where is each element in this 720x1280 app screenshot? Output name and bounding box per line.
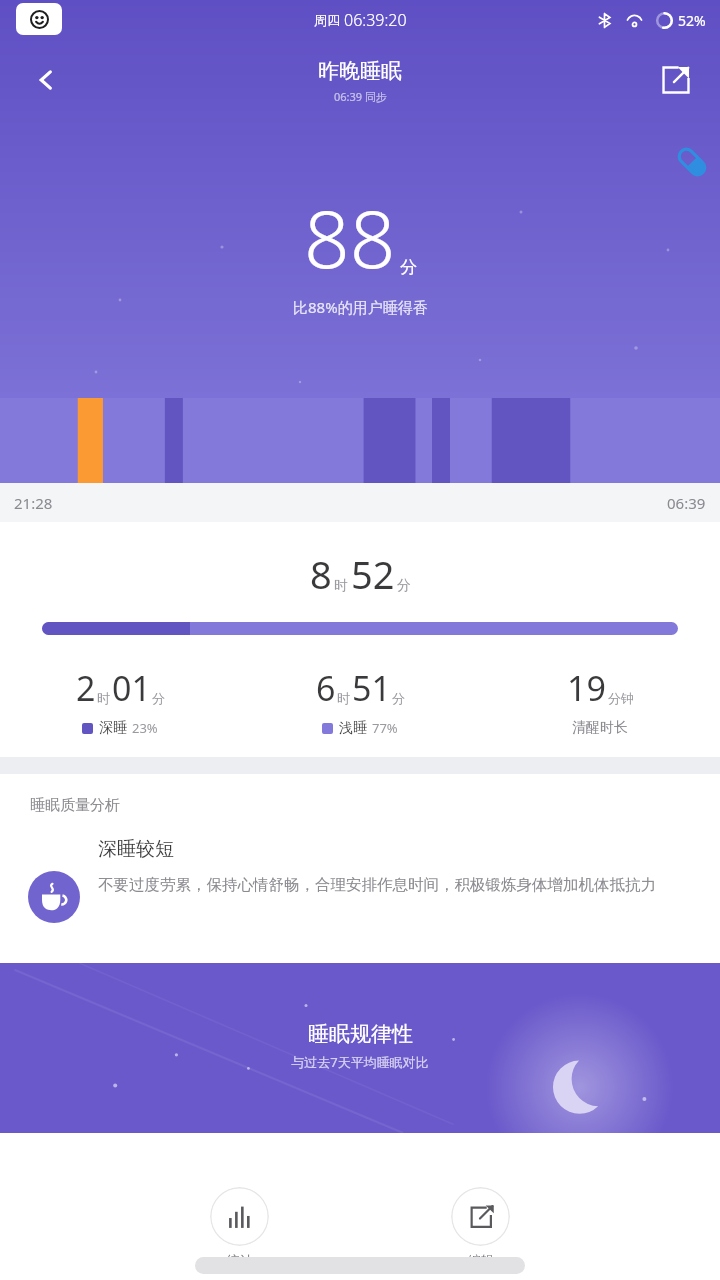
button[interactable]: 分享 [652, 56, 700, 104]
staticText: 睡眠规律性 [308, 1021, 413, 1047]
button[interactable]: 返回 [22, 56, 70, 104]
staticText: 51 [352, 665, 391, 711]
staticText: 时 [337, 690, 350, 706]
staticText: 21:28 [14, 493, 53, 513]
staticText: 编辑 [468, 1252, 494, 1268]
staticText: 与过去7天平均睡眠对比 [291, 1053, 429, 1071]
staticText: 52 [351, 548, 395, 600]
staticText: 19 [567, 665, 606, 711]
staticText: 2 [76, 665, 96, 711]
staticText: 06:39 同步 [334, 89, 387, 104]
staticText: 88 [304, 182, 396, 291]
staticText: 不要过度劳累，保持心情舒畅，合理安排作息时间，积极锻炼身体增加机体抵抗力 [98, 875, 656, 895]
staticText: 昨晚睡眠 [318, 58, 402, 84]
staticText: 比88%的用户睡得香 [293, 297, 428, 317]
staticText: 周四 [314, 11, 344, 29]
button[interactable]: 药物提醒 [668, 138, 716, 186]
staticText: 01 [112, 665, 151, 711]
staticText: 06:39:20 [344, 9, 407, 31]
staticText: 分钟 [608, 690, 634, 706]
staticText: 06:39 [667, 493, 706, 513]
staticText: 时 [97, 690, 110, 706]
button[interactable]: 编辑 [443, 1183, 518, 1272]
staticText: 分 [152, 690, 165, 706]
staticText: 6 [316, 665, 336, 711]
staticText: 分 [400, 257, 417, 278]
staticText: 浅睡 [339, 719, 367, 737]
button[interactable]: 统计 [202, 1183, 277, 1272]
staticText: 深睡 [99, 719, 127, 737]
staticText: 23% [132, 719, 158, 737]
staticText: 睡眠质量分析 [30, 796, 120, 815]
staticText: 77% [372, 719, 398, 737]
staticText: 8 [310, 548, 332, 600]
staticText: 52% [678, 11, 706, 30]
staticText: 统计 [227, 1252, 253, 1268]
staticText: 分 [397, 577, 411, 595]
staticText: 深睡较短 [98, 837, 174, 861]
button[interactable]: 睡眠规律性 [0, 963, 720, 1133]
staticText: 分 [392, 690, 405, 706]
staticText: 时 [334, 577, 348, 595]
staticText: 清醒时长 [572, 719, 628, 737]
